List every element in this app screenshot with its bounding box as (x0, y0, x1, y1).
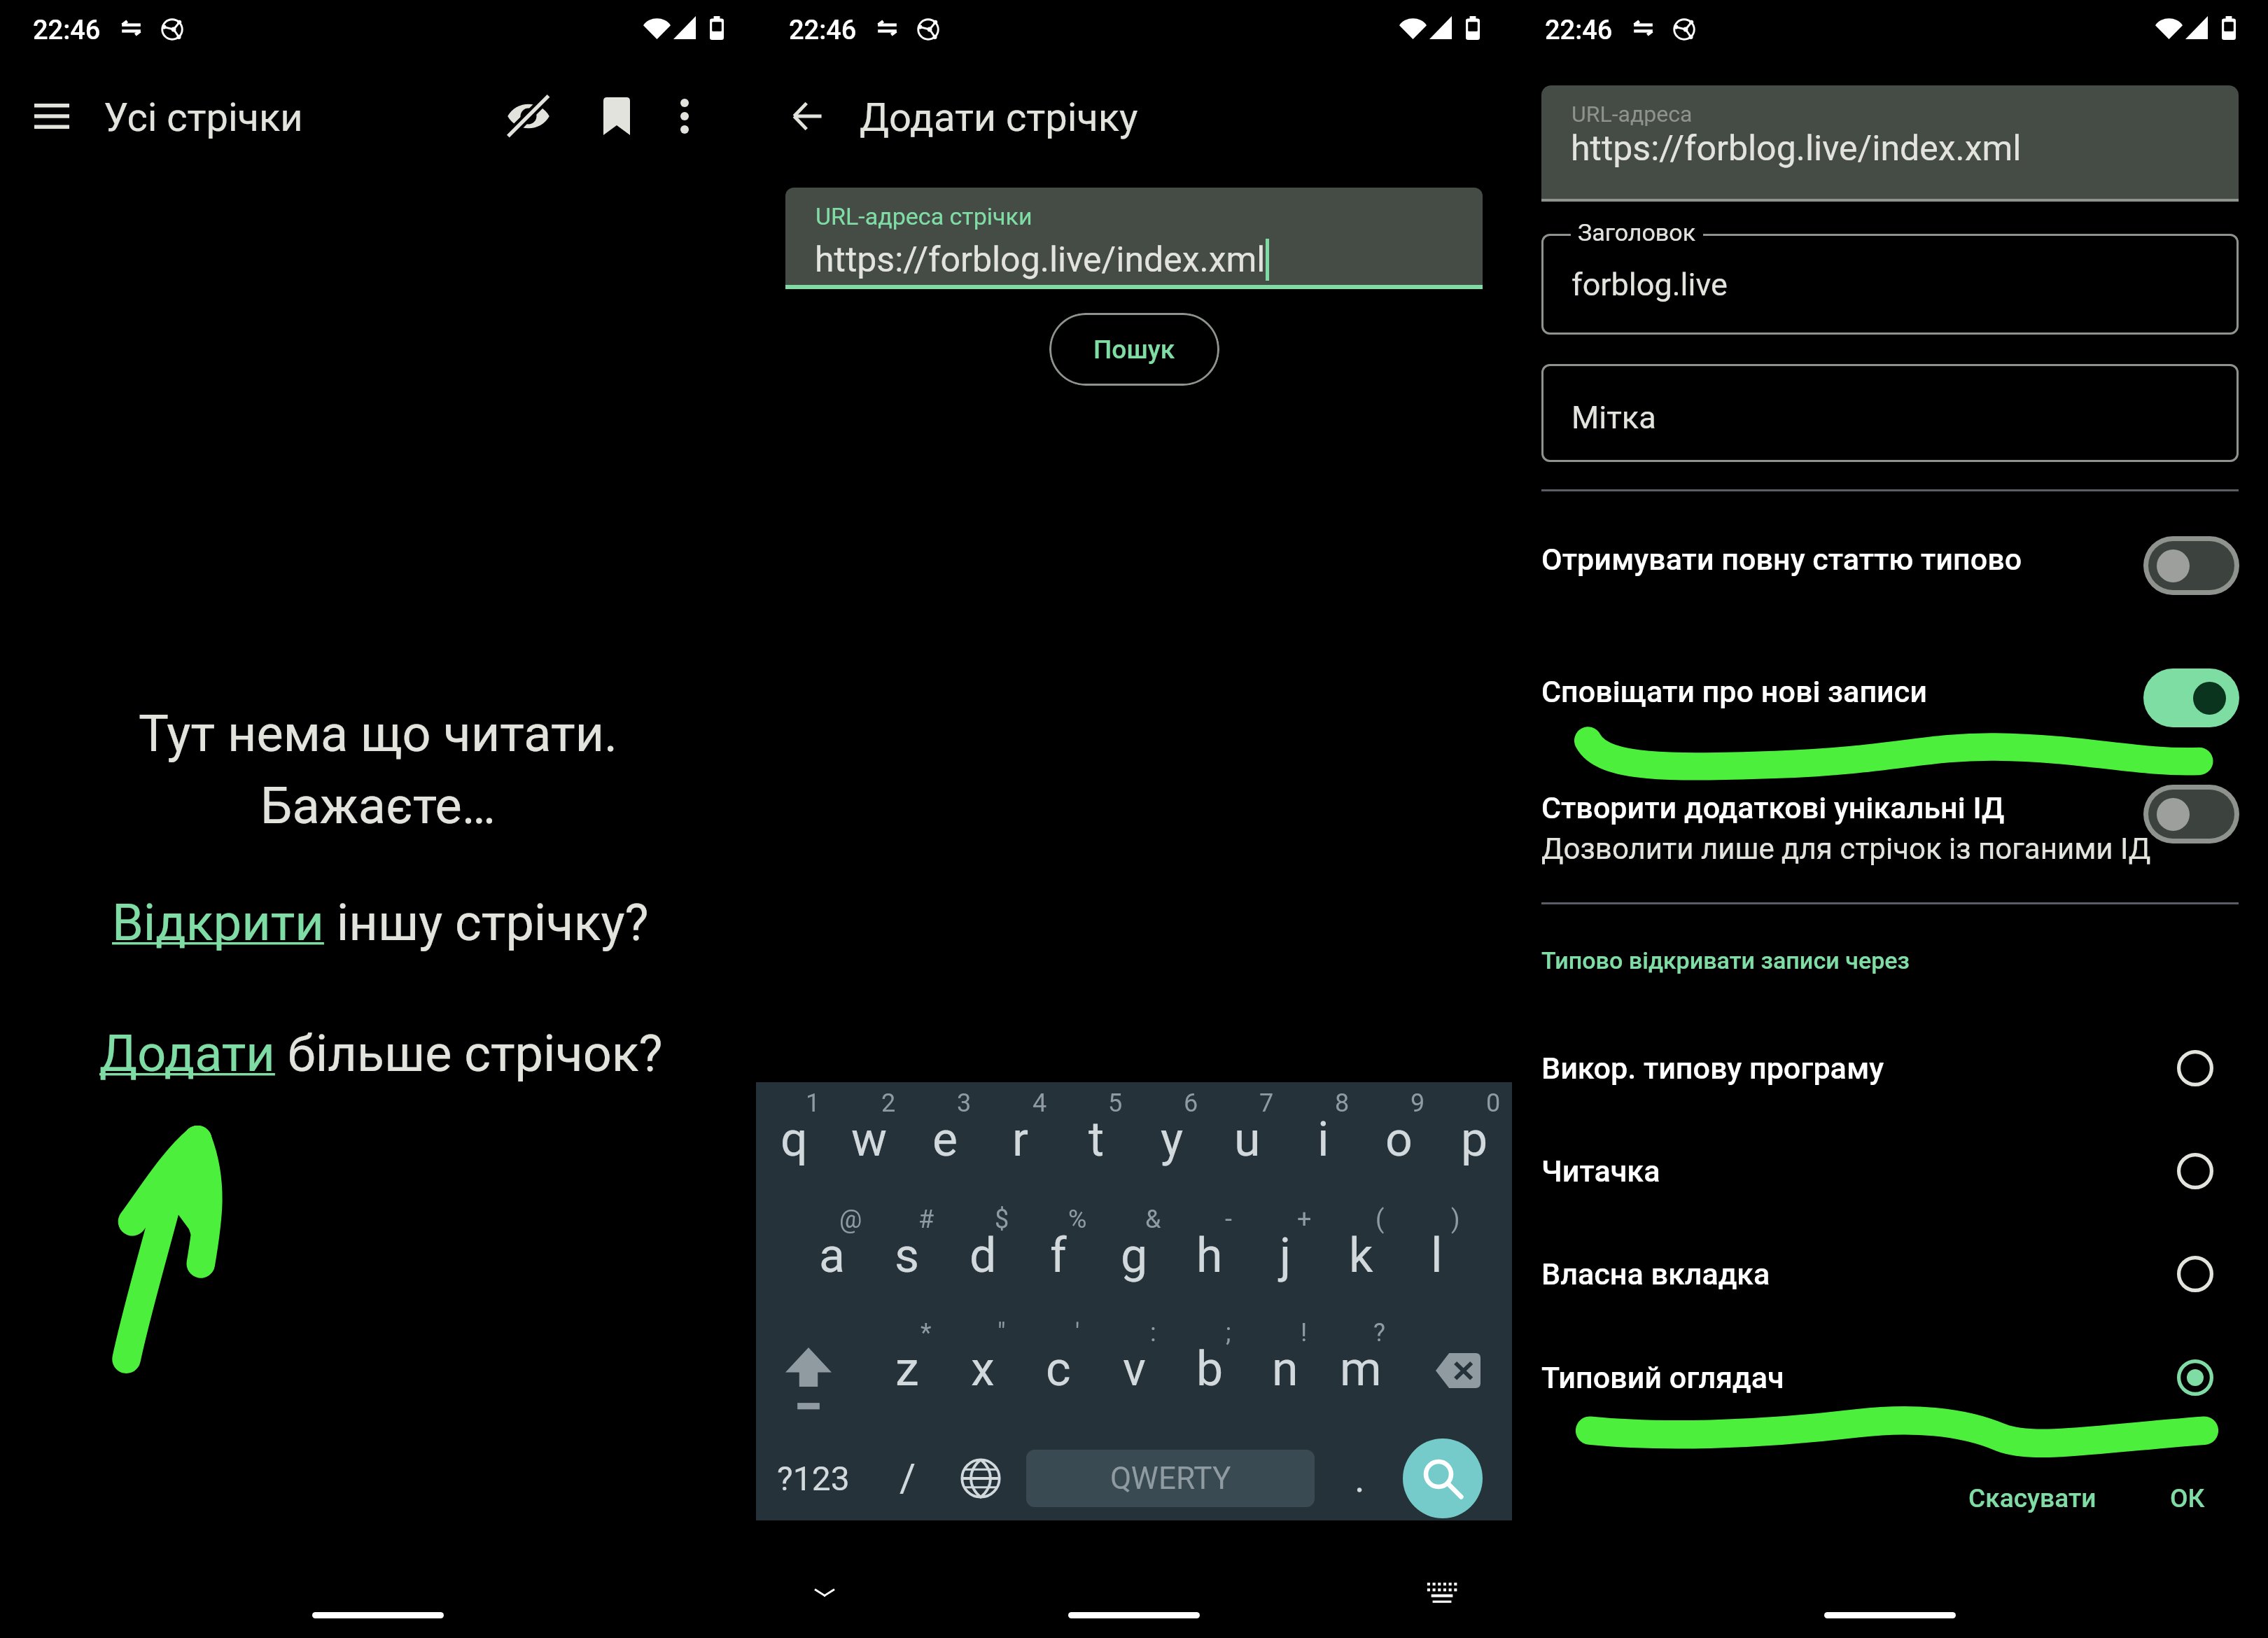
staticText: 22:46 (1545, 15, 1613, 46)
button[interactable]: Bookmarks (571, 67, 662, 165)
staticText: r (1012, 1112, 1029, 1168)
button[interactable]: QWERTY (1026, 1450, 1315, 1507)
button[interactable]: + (1247, 1203, 1323, 1308)
staticText: l (1431, 1228, 1443, 1284)
staticText: o (1385, 1112, 1413, 1168)
button[interactable]: - (1172, 1203, 1247, 1308)
staticText: QWERTY (1110, 1460, 1231, 1497)
button[interactable]: 7 (1210, 1087, 1285, 1192)
staticText: Власна вкладка (1541, 1256, 1770, 1291)
button[interactable]: Сповіщати про нові записи (1512, 654, 2268, 741)
button[interactable]: 2 (832, 1087, 907, 1192)
staticText: 1 (806, 1088, 820, 1118)
staticText: p (1461, 1112, 1488, 1168)
staticText: y (1161, 1112, 1184, 1168)
button[interactable]: Скасувати (1967, 1483, 2098, 1513)
staticText: ' (1075, 1318, 1080, 1347)
button[interactable]: Відкрити (112, 893, 324, 952)
button[interactable]: Search (1403, 1438, 1483, 1518)
button[interactable]: ) (1399, 1203, 1474, 1308)
staticText: ! (1301, 1318, 1308, 1347)
button[interactable]: URL-адреса (1541, 85, 2239, 199)
button[interactable]: ?123 (764, 1429, 862, 1527)
button[interactable] (1541, 234, 2239, 335)
button[interactable]: Backspace (1406, 1315, 1511, 1427)
button[interactable]: Switch keyboard (1403, 1554, 1480, 1631)
button[interactable]: @ (794, 1203, 869, 1308)
staticText: ?123 (777, 1459, 850, 1498)
button[interactable]: 0 (1436, 1087, 1512, 1192)
button[interactable]: . (1324, 1429, 1394, 1527)
button[interactable]: More options (641, 67, 728, 165)
staticText: Викор. типову програму (1541, 1051, 1884, 1086)
staticText: $ (995, 1205, 1009, 1234)
staticText: s (895, 1228, 920, 1284)
staticText: більше стрічок? (275, 1024, 663, 1083)
button[interactable]: Створити додаткові унікальні ІД (1512, 773, 2268, 895)
button[interactable]: 5 (1058, 1087, 1134, 1192)
button[interactable]: Власна вкладка (1512, 1225, 2268, 1323)
button[interactable]: Menu (10, 67, 94, 165)
staticText: URL-адреса (1571, 101, 1693, 127)
button[interactable]: " (945, 1317, 1021, 1422)
staticText: j (1280, 1228, 1291, 1284)
staticText: - (1225, 1205, 1232, 1234)
button[interactable]: 1 (756, 1087, 832, 1192)
button[interactable]: Отримувати повну статтю типово (1512, 522, 2268, 609)
staticText: ) (1451, 1205, 1460, 1234)
staticText: Додати стрічку (860, 94, 1138, 141)
button[interactable]: & (1096, 1203, 1172, 1308)
staticText: 9 (1410, 1088, 1425, 1118)
staticText: Тут нема що читати. Бажаєте… (90, 704, 666, 836)
button[interactable]: Пошук (1049, 313, 1219, 386)
staticText: % (1068, 1205, 1087, 1234)
button[interactable]: 6 (1134, 1087, 1210, 1192)
button[interactable]: Hide keyboard (786, 1554, 863, 1631)
button[interactable]: 9 (1361, 1087, 1436, 1192)
staticText: 4 (1032, 1088, 1047, 1118)
button[interactable]: 4 (983, 1087, 1058, 1192)
staticText: Типовий оглядач (1541, 1360, 1784, 1395)
staticText: d (969, 1228, 997, 1284)
button[interactable]: / (866, 1429, 950, 1527)
button[interactable]: Back (766, 67, 850, 165)
staticText: # (918, 1205, 934, 1234)
staticText: u (1234, 1112, 1261, 1168)
staticText: t (1088, 1112, 1105, 1168)
staticText: Типово відкривати записи через (1541, 946, 1910, 974)
button[interactable]: URL-адреса стрічки (785, 188, 1483, 285)
staticText: * (920, 1318, 932, 1347)
button[interactable]: Додати (99, 1024, 275, 1083)
button[interactable]: $ (945, 1203, 1021, 1308)
button[interactable]: Shift (756, 1320, 861, 1439)
staticText: ОК (2170, 1483, 2205, 1513)
staticText: https://forblog.live/index.xml (1571, 128, 2022, 169)
button[interactable]: ОК (2169, 1483, 2206, 1513)
staticText: Усі стрічки (104, 94, 303, 141)
button[interactable]: Hide read items (483, 67, 574, 165)
button[interactable]: ; (1172, 1317, 1247, 1422)
button[interactable] (2148, 673, 2234, 722)
button[interactable]: Викор. типову програму (1512, 1019, 2268, 1117)
button[interactable] (2148, 541, 2234, 590)
button[interactable]: ( (1323, 1203, 1399, 1308)
button[interactable] (2148, 790, 2234, 839)
button[interactable]: ! (1247, 1317, 1323, 1422)
staticText: Дозволити лише для стрічок із поганими І… (1541, 832, 2151, 866)
button[interactable]: : (1096, 1317, 1172, 1422)
button[interactable]: Типовий оглядач (1512, 1329, 2268, 1427)
button[interactable]: Change language (939, 1429, 1023, 1527)
staticText: e (932, 1112, 958, 1168)
button[interactable]: Читачка (1512, 1122, 2268, 1220)
button[interactable]: ? (1323, 1317, 1399, 1422)
button[interactable]: 8 (1285, 1087, 1361, 1192)
button[interactable]: 3 (907, 1087, 983, 1192)
staticText: x (971, 1341, 995, 1397)
button[interactable]: Мітка (1541, 364, 2239, 462)
button[interactable]: * (869, 1317, 945, 1422)
button[interactable]: ' (1021, 1317, 1096, 1422)
staticText: 0 (1486, 1088, 1501, 1118)
button[interactable]: # (869, 1203, 945, 1308)
staticText: ? (1373, 1318, 1386, 1347)
button[interactable]: % (1021, 1203, 1096, 1308)
